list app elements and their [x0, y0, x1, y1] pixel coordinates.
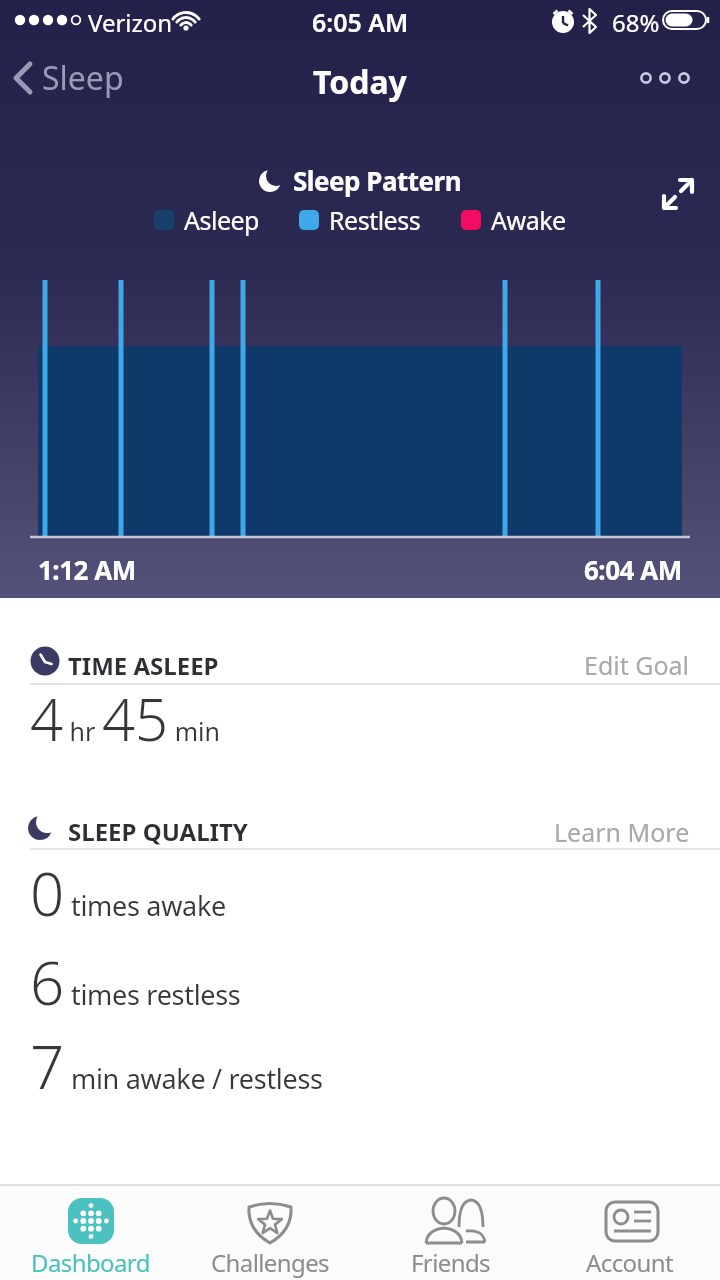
- button[interactable]: Challenges: [180, 1186, 360, 1280]
- staticText: Dashboard: [31, 1246, 150, 1279]
- staticText: 68%: [612, 6, 660, 39]
- staticText: 4 hr 45 min: [30, 679, 220, 758]
- button[interactable]: Learn More: [554, 815, 690, 849]
- staticText: Asleep: [184, 203, 259, 237]
- button[interactable]: [660, 176, 698, 214]
- staticText: Challenges: [211, 1246, 330, 1279]
- staticText: Verizon: [88, 6, 173, 39]
- staticText: Awake: [491, 203, 566, 237]
- staticText: 6:04 AM: [584, 552, 682, 587]
- staticText: SLEEP QUALITY: [68, 815, 248, 848]
- staticText: Sleep: [42, 56, 124, 100]
- staticText: 7 min awake / restless: [30, 1025, 323, 1107]
- staticText: Sleep Pattern: [293, 163, 462, 198]
- staticText: 0 times awake: [30, 852, 226, 934]
- button[interactable]: Sleep: [10, 56, 124, 100]
- staticText: Today: [313, 60, 407, 104]
- staticText: 6:05 AM: [312, 5, 409, 39]
- staticText: 1:12 AM: [38, 552, 136, 587]
- staticText: TIME ASLEEP: [68, 649, 219, 682]
- staticText: Account: [586, 1246, 674, 1279]
- button[interactable]: Friends: [360, 1186, 540, 1280]
- button[interactable]: Edit Goal: [584, 648, 690, 682]
- button[interactable]: Dashboard: [0, 1186, 180, 1280]
- staticText: Learn More: [554, 815, 690, 849]
- staticText: Edit Goal: [584, 648, 690, 682]
- button[interactable]: [640, 68, 700, 88]
- staticText: 6 times restless: [30, 941, 241, 1023]
- staticText: Friends: [411, 1246, 490, 1279]
- staticText: Restless: [329, 203, 421, 237]
- button[interactable]: Account: [540, 1186, 720, 1280]
